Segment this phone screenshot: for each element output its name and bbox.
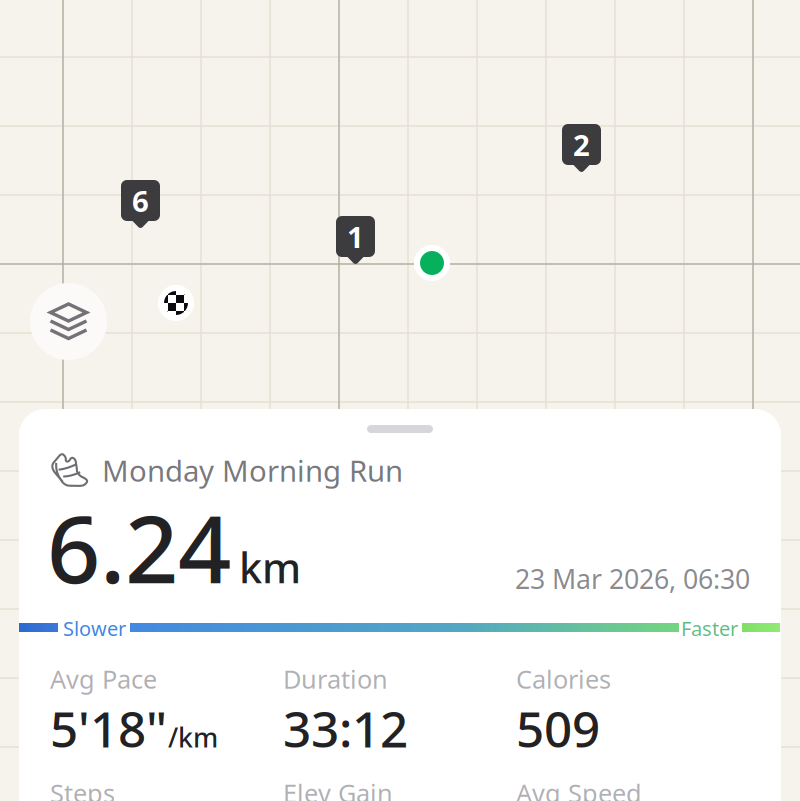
button[interactable]: Kilometre 6 split (121, 180, 160, 229)
button[interactable]: Kilometre 2 split (562, 124, 601, 173)
button[interactable]: Start of run (414, 245, 450, 281)
staticText: Avg Speed (516, 776, 642, 801)
staticText: 509 (516, 696, 600, 761)
staticText: 1 (347, 217, 364, 256)
staticText: Elev Gain (283, 776, 393, 801)
staticText: km (239, 540, 301, 595)
staticText: 6 (132, 181, 149, 220)
staticText: /km (168, 719, 218, 755)
button[interactable]: Kilometre 1 split (336, 216, 375, 265)
staticText: Duration (283, 662, 388, 696)
staticText: Monday Morning Run (102, 451, 403, 490)
staticText: Slower (63, 615, 126, 642)
staticText: 33:12 (283, 696, 408, 761)
staticText: Faster (681, 615, 738, 642)
button[interactable]: Map layers (30, 283, 107, 360)
staticText: 23 Mar 2026, 06:30 (515, 561, 750, 596)
staticText: 5'18" (50, 696, 167, 761)
staticText: Steps (50, 776, 115, 801)
button[interactable]: Finish of run (158, 285, 194, 321)
staticText: 2 (573, 125, 590, 164)
staticText: Avg Pace (50, 662, 157, 696)
staticText: 6.24 (47, 485, 231, 609)
staticText: Calories (516, 662, 611, 696)
